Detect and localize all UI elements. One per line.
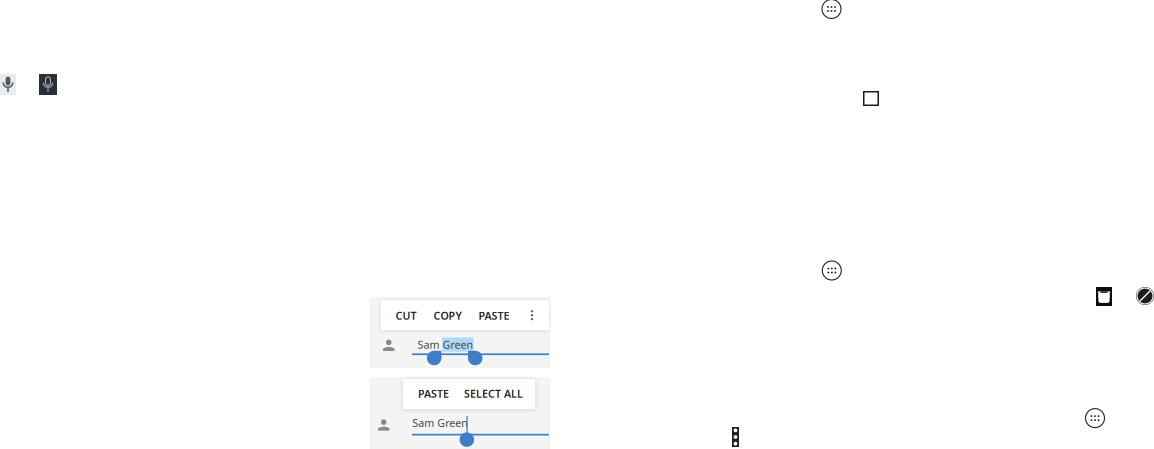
- staticText: Green: [442, 337, 473, 352]
- button[interactable]: CUT: [389, 299, 422, 332]
- button[interactable]: More options: [525, 302, 539, 328]
- staticText: COPY: [433, 308, 461, 323]
- staticText: Sam Green: [412, 416, 468, 430]
- staticText: PASTE: [478, 308, 509, 323]
- button[interactable]: COPY: [427, 299, 467, 332]
- button[interactable]: All apps: [822, 261, 841, 280]
- staticText: CUT: [395, 308, 416, 323]
- button[interactable]: Microphone, recording: [39, 74, 57, 95]
- button[interactable]: Delete: [1096, 287, 1112, 306]
- button[interactable]: Microphone: [0, 74, 16, 95]
- staticText: Sam: [417, 337, 442, 352]
- button[interactable]: PASTE: [472, 299, 515, 332]
- staticText: PASTE: [418, 386, 449, 401]
- button[interactable]: PASTE: [412, 377, 455, 410]
- button[interactable]: All apps: [822, 0, 841, 18]
- staticText: SELECT ALL: [464, 386, 523, 401]
- button[interactable]: SELECT ALL: [458, 377, 529, 410]
- button[interactable]: Blocked: [1136, 287, 1154, 305]
- button[interactable]: Stop: [863, 91, 879, 106]
- button[interactable]: All apps: [1085, 409, 1104, 428]
- button[interactable]: More: [732, 427, 739, 447]
